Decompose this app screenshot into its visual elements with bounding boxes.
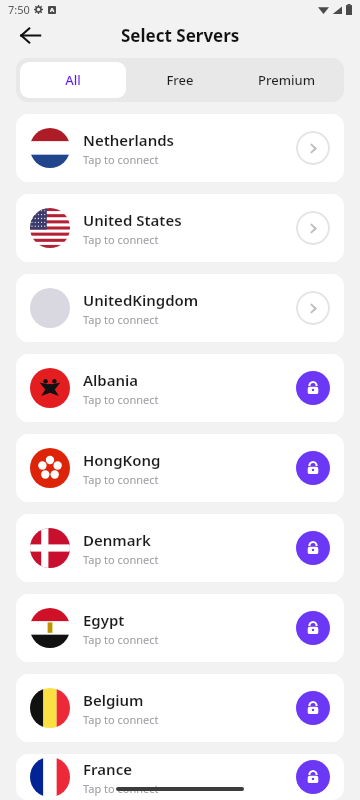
button[interactable]: Free — [126, 62, 233, 98]
button[interactable]: France — [16, 754, 344, 800]
button[interactable]: Egypt — [16, 594, 344, 662]
staticText: Netherlands — [83, 130, 174, 150]
staticText: 7:50 — [8, 2, 30, 17]
button[interactable]: HongKong — [16, 434, 344, 502]
button[interactable]: Denmark — [16, 514, 344, 582]
staticText: United States — [83, 210, 182, 230]
button[interactable]: Premium — [233, 62, 340, 98]
button[interactable]: Albania — [16, 354, 344, 422]
button[interactable]: Netherlands — [16, 114, 344, 182]
button[interactable]: All — [20, 62, 126, 98]
staticText: A — [50, 6, 55, 14]
staticText: Tap to connect — [83, 232, 159, 247]
staticText: Tap to connect — [83, 781, 159, 796]
staticText: Tap to connect — [83, 312, 159, 327]
staticText: Albania — [83, 370, 139, 390]
button[interactable]: Premium locked — [296, 611, 330, 645]
staticText: HongKong — [83, 450, 161, 470]
button[interactable]: Premium locked — [296, 371, 330, 405]
staticText: Egypt — [83, 610, 125, 630]
button[interactable]: UnitedKingdom — [16, 274, 344, 342]
staticText: Select Servers — [121, 24, 240, 47]
staticText: All — [65, 71, 81, 89]
button[interactable]: Connect — [296, 211, 330, 245]
button[interactable]: Premium locked — [296, 531, 330, 565]
button[interactable]: Belgium — [16, 674, 344, 742]
button[interactable]: Back — [10, 18, 50, 52]
staticText: Tap to connect — [83, 392, 159, 407]
staticText: Tap to connect — [83, 472, 159, 487]
button[interactable]: Premium locked — [296, 691, 330, 725]
staticText: Tap to connect — [83, 152, 159, 167]
staticText: Denmark — [83, 530, 151, 550]
button[interactable]: Premium locked — [296, 451, 330, 485]
button[interactable]: Connect — [296, 131, 330, 165]
staticText: Belgium — [83, 690, 144, 710]
staticText: Free — [166, 71, 194, 89]
staticText: France — [83, 759, 132, 779]
staticText: Tap to connect — [83, 632, 159, 647]
button[interactable]: Premium locked — [296, 760, 330, 794]
button[interactable]: Connect — [296, 291, 330, 325]
button[interactable]: United States — [16, 194, 344, 262]
staticText: Tap to connect — [83, 552, 159, 567]
staticText: Premium — [258, 71, 315, 89]
staticText: Tap to connect — [83, 712, 159, 727]
staticText: UnitedKingdom — [83, 290, 199, 310]
